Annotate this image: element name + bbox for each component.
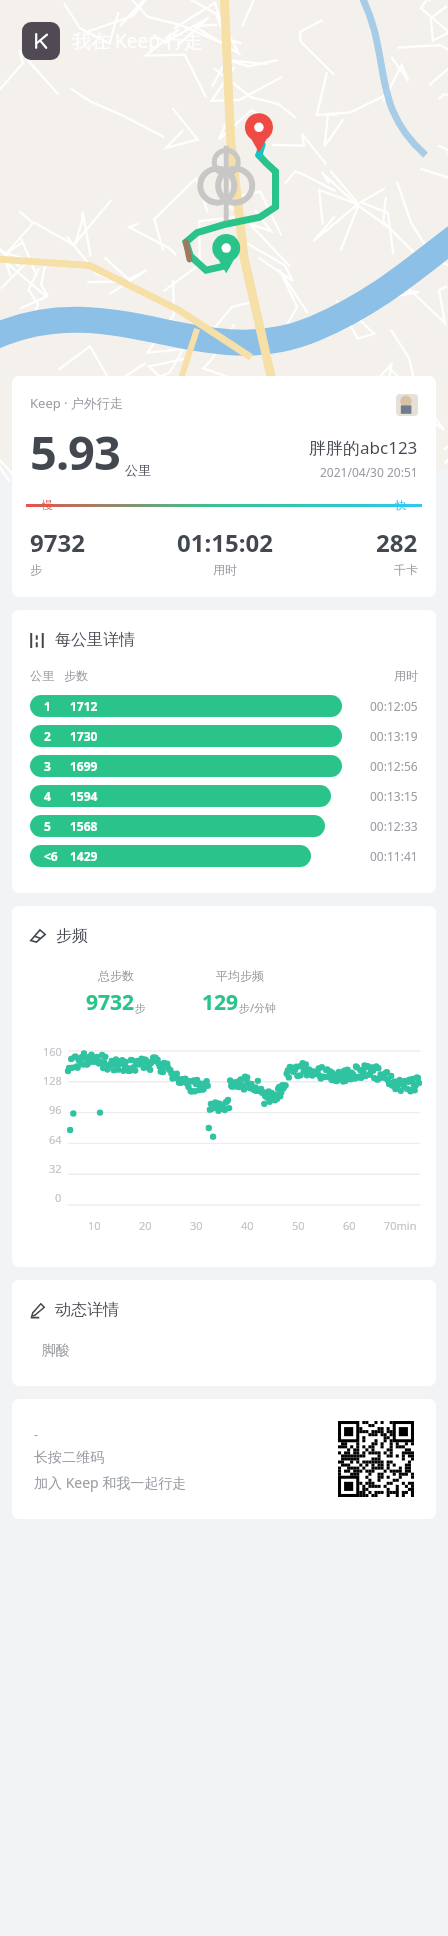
staticText: 快 [395,498,406,512]
staticText: 00:11:41 [370,848,418,864]
staticText: 9732 [86,988,135,1017]
staticText: 公里 [125,462,151,478]
staticText: 32 [49,1161,62,1176]
staticText: Keep · 户外行走 [30,394,123,412]
staticText: 1699 [70,758,98,774]
staticText: 129 [202,988,239,1017]
staticText: 9732 [30,526,85,559]
staticText: 5 [44,818,51,834]
button[interactable]: 4 [30,785,418,807]
staticText: 1429 [70,848,98,864]
staticText: 1 [44,698,51,714]
staticText: 2 [44,728,51,744]
staticText: 加入 Keep 和我一起行走 [34,1473,187,1492]
staticText: 128 [43,1073,62,1088]
staticText: 每公里详情 [55,630,135,650]
staticText: 160 [43,1044,62,1059]
staticText: 长按二维码 [34,1449,104,1467]
staticText: 1712 [70,698,98,714]
staticText: <6 [44,848,58,864]
staticText: 70min [384,1218,417,1233]
staticText: 步/分钟 [239,1000,277,1015]
staticText: 胖胖的abc123 [309,436,418,459]
staticText: 20 [139,1218,152,1233]
staticText: 30 [190,1218,203,1233]
button[interactable]: 3 [30,755,418,777]
button[interactable]: QR code [338,1421,414,1497]
staticText: 1594 [70,788,98,804]
staticText: 千卡 [394,562,418,577]
staticText: 00:12:05 [370,698,418,714]
staticText: 00:12:56 [370,758,418,774]
staticText: 1730 [70,728,98,744]
button[interactable]: 5 [30,815,418,837]
staticText: 慢 [42,498,53,512]
other: Keep logo [22,22,60,60]
staticText: 1568 [70,818,98,834]
staticText: 动态详情 [55,1300,119,1320]
staticText: 10 [88,1218,101,1233]
staticText: 2021/04/30 20:51 [320,464,418,480]
staticText: 我在 Keep 行走 [72,28,203,54]
staticText: 总步数 [98,968,134,983]
staticText: 公里 [30,668,54,683]
staticText: 40 [241,1218,254,1233]
staticText: 00:13:19 [370,728,418,744]
staticText: 00:12:33 [370,818,418,834]
staticText: 用时 [394,668,418,683]
staticText: 步频 [56,926,88,946]
staticText: 5.93 [30,420,120,484]
staticText: 00:13:15 [370,788,418,804]
staticText: 用时 [213,562,237,577]
staticText: 3 [44,758,51,774]
staticText: 步 [30,562,42,577]
button[interactable]: 2 [30,725,418,747]
staticText: 脚酸 [42,1342,70,1360]
button[interactable]: <6 [30,845,418,867]
staticText: 4 [44,788,51,804]
staticText: 60 [343,1218,356,1233]
button[interactable]: 1 [30,695,418,717]
staticText: 64 [49,1132,62,1147]
staticText: - [34,1426,38,1442]
button[interactable]: Keep logo [22,22,203,60]
staticText: 0 [55,1190,62,1205]
staticText: 平均步频 [216,968,264,983]
staticText: 282 [376,526,418,559]
staticText: 步数 [64,668,88,683]
staticText: 01:15:02 [177,526,273,559]
staticText: 步 [135,1001,146,1015]
staticText: 50 [292,1218,305,1233]
staticText: 96 [49,1102,62,1117]
other: Avatar [396,394,418,416]
